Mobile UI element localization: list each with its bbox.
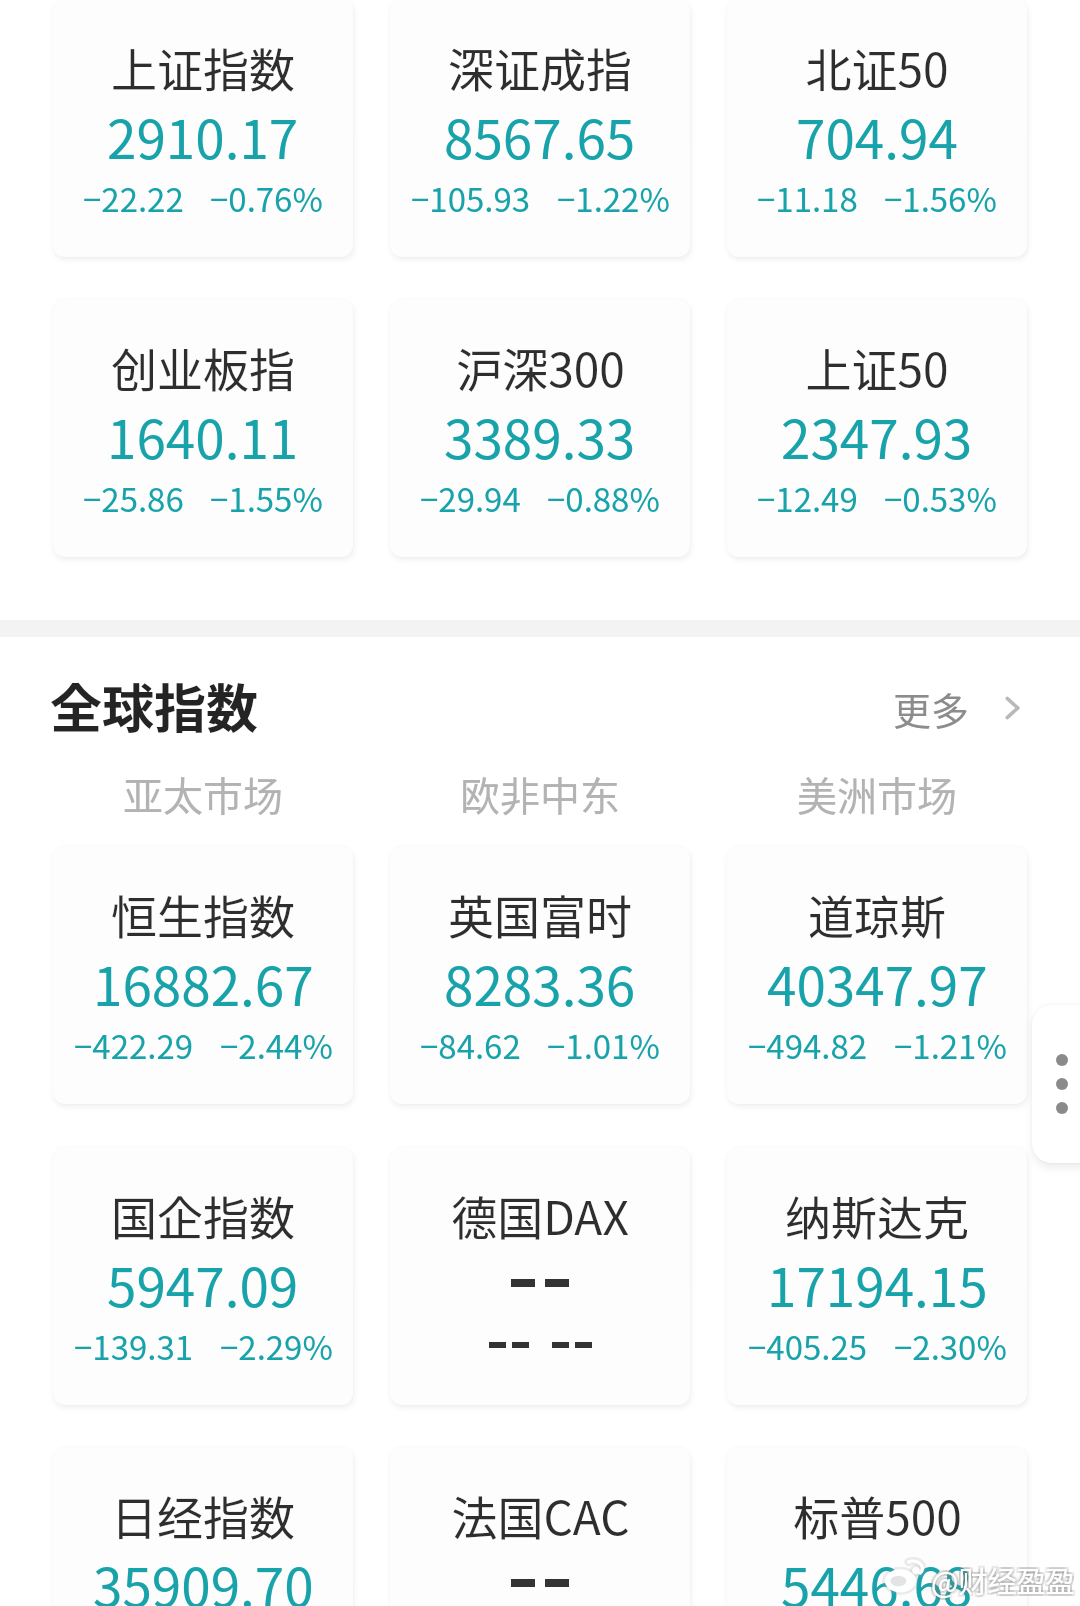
button[interactable]: 恒生指数	[53, 846, 353, 1104]
staticText: −139.31	[74, 1322, 194, 1370]
staticText: 恒生指数	[111, 881, 295, 948]
staticText: 深证成指	[448, 34, 632, 101]
staticText: 亚太市场	[123, 765, 283, 823]
staticText: 上证指数	[111, 34, 295, 101]
staticText: 创业板指	[111, 334, 295, 401]
staticText: @财经盈盈	[929, 1561, 1073, 1603]
staticText: 8283.36	[444, 945, 636, 1022]
staticText: @财经盈盈	[931, 1557, 1075, 1599]
staticText: −1.21%	[894, 1021, 1007, 1069]
button[interactable]: 更多	[893, 675, 1024, 741]
staticText: −1.56%	[884, 174, 997, 222]
staticText: 英国富时	[448, 881, 632, 948]
staticText: −2.29%	[220, 1322, 333, 1370]
staticText: @财经盈盈	[929, 1559, 1073, 1601]
staticText: −22.22	[83, 174, 184, 222]
button[interactable]: More options	[1032, 1005, 1080, 1163]
button[interactable]: 创业板指	[53, 299, 353, 557]
staticText: −1.55%	[210, 474, 323, 522]
staticText: 德国DAX	[451, 1182, 629, 1249]
button[interactable]: 道琼斯	[727, 846, 1027, 1104]
button[interactable]: 沪深300	[390, 299, 690, 557]
button[interactable]: 国企指数	[53, 1147, 353, 1405]
staticText: 纳斯达克	[785, 1182, 969, 1249]
staticText: 北证50	[805, 34, 949, 101]
staticText: −2.44%	[220, 1021, 333, 1069]
staticText: 16882.67	[93, 945, 314, 1022]
staticText: 道琼斯	[808, 881, 946, 948]
staticText: 国企指数	[111, 1182, 295, 1249]
staticText: −29.94	[420, 474, 521, 522]
staticText: −1.22%	[557, 174, 670, 222]
staticText: 沪深300	[456, 334, 625, 401]
staticText: −422.29	[74, 1021, 194, 1069]
staticText: @财经盈盈	[929, 1557, 1073, 1599]
staticText: 标普500	[793, 1482, 962, 1549]
staticText: 上证50	[805, 334, 949, 401]
staticText: 美洲市场	[797, 765, 957, 823]
staticText: 日经指数	[111, 1482, 295, 1549]
button[interactable]: 亚太市场	[53, 761, 353, 827]
button[interactable]: 英国富时	[390, 846, 690, 1104]
button[interactable]: 法国CAC	[390, 1447, 690, 1606]
button[interactable]: 美洲市场	[727, 761, 1027, 827]
staticText: @财经盈盈	[933, 1561, 1077, 1603]
staticText: 8567.65	[444, 98, 636, 175]
staticText: −11.18	[757, 174, 858, 222]
staticText: −1.01%	[547, 1021, 660, 1069]
button[interactable]: 上证50	[727, 299, 1027, 557]
button[interactable]: 纳斯达克	[727, 1147, 1027, 1405]
staticText: @财经盈盈	[931, 1561, 1075, 1603]
staticText: −2.30%	[894, 1322, 1007, 1370]
staticText: @财经盈盈	[933, 1559, 1077, 1601]
staticText: 3389.33	[444, 398, 636, 475]
button[interactable]: 上证指数	[53, 0, 353, 257]
staticText: 法国CAC	[451, 1482, 630, 1549]
staticText: 35909.70	[93, 1546, 314, 1606]
staticText: 2910.17	[107, 98, 299, 175]
staticText: −12.49	[757, 474, 858, 522]
staticText: 更多	[893, 681, 970, 736]
staticText: 1640.11	[107, 398, 299, 475]
staticText: −494.82	[748, 1021, 868, 1069]
staticText: @财经盈盈	[933, 1557, 1077, 1599]
staticText: 全球指数	[50, 668, 259, 743]
button[interactable]: 欧非中东	[390, 761, 690, 827]
staticText: @财经盈盈	[931, 1559, 1075, 1601]
staticText: −84.62	[420, 1021, 521, 1069]
staticText: 2347.93	[781, 398, 973, 475]
button[interactable]: 北证50	[727, 0, 1027, 257]
staticText: −25.86	[83, 474, 184, 522]
button[interactable]: 标普500	[727, 1447, 1027, 1606]
staticText: 704.94	[796, 98, 958, 175]
staticText: −105.93	[411, 174, 531, 222]
staticText: 17194.15	[767, 1246, 988, 1323]
staticText: 5947.09	[107, 1246, 299, 1323]
button[interactable]: 深证成指	[390, 0, 690, 257]
staticText: 5446.68	[781, 1546, 973, 1606]
staticText: −405.25	[748, 1322, 868, 1370]
staticText: −0.53%	[884, 474, 997, 522]
staticText: 欧非中东	[460, 765, 620, 823]
staticText: −0.88%	[547, 474, 660, 522]
staticText: −0.76%	[210, 174, 323, 222]
staticText: 40347.97	[767, 945, 988, 1022]
button[interactable]: 德国DAX	[390, 1147, 690, 1405]
button[interactable]: 日经指数	[53, 1447, 353, 1606]
